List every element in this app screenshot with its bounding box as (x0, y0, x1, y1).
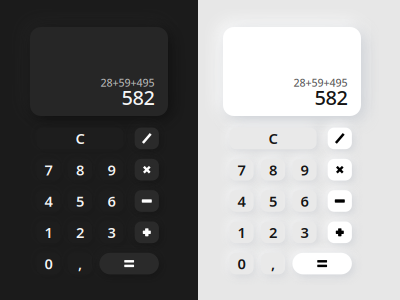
staticText: 9 (107, 160, 115, 179)
button[interactable]: , (261, 253, 285, 274)
staticText: 6 (300, 191, 308, 211)
button[interactable]: 3 (292, 221, 317, 243)
button[interactable]: Multiply (328, 159, 352, 180)
staticText: 28+59+495 (293, 75, 347, 90)
button[interactable]: 6 (292, 190, 317, 212)
button[interactable]: 7 (229, 159, 254, 180)
button[interactable]: 0 (36, 253, 61, 274)
button[interactable]: 2 (68, 221, 92, 243)
button[interactable]: 4 (36, 190, 61, 212)
button[interactable]: Add (328, 221, 352, 243)
staticText: 7 (44, 160, 52, 179)
button[interactable]: Equals (99, 253, 159, 274)
button[interactable]: Multiply (135, 159, 159, 180)
staticText: 2 (269, 223, 277, 242)
staticText: 6 (107, 191, 115, 211)
staticText: 8 (76, 160, 84, 179)
staticText: 3 (300, 223, 308, 242)
button[interactable]: 1 (36, 221, 61, 243)
staticText: 2 (76, 223, 84, 242)
staticText: C (75, 129, 84, 148)
staticText: 582 (314, 84, 347, 111)
staticText: 9 (300, 160, 308, 179)
staticText: , (78, 254, 82, 273)
staticText: 1 (237, 223, 245, 242)
button[interactable]: 2 (261, 221, 285, 243)
button[interactable]: C (36, 128, 124, 149)
staticText: 5 (76, 191, 84, 211)
button[interactable]: 6 (99, 190, 124, 212)
button[interactable]: C (229, 128, 317, 149)
staticText: , (271, 254, 275, 273)
staticText: 0 (44, 254, 52, 273)
button[interactable]: 0 (229, 253, 254, 274)
button[interactable]: Divide (135, 128, 159, 149)
button[interactable]: 8 (68, 159, 92, 180)
staticText: 1 (44, 223, 52, 242)
staticText: C (268, 129, 277, 148)
button[interactable]: , (68, 253, 92, 274)
button[interactable]: 3 (99, 221, 124, 243)
button[interactable]: Subtract (328, 190, 352, 212)
staticText: 8 (269, 160, 277, 179)
staticText: 7 (237, 160, 245, 179)
button[interactable]: 7 (36, 159, 61, 180)
staticText: 582 (121, 84, 154, 111)
button[interactable]: 9 (99, 159, 124, 180)
staticText: 5 (269, 191, 277, 211)
button[interactable]: 9 (292, 159, 317, 180)
button[interactable]: 4 (229, 190, 254, 212)
button[interactable]: Divide (328, 128, 352, 149)
button[interactable]: Subtract (135, 190, 159, 212)
staticText: 28+59+495 (100, 75, 154, 90)
staticText: 4 (237, 191, 245, 211)
button[interactable]: Equals (292, 253, 352, 274)
button[interactable]: 5 (261, 190, 285, 212)
staticText: 3 (107, 223, 115, 242)
button[interactable]: Add (135, 221, 159, 243)
button[interactable]: 8 (261, 159, 285, 180)
button[interactable]: 5 (68, 190, 92, 212)
staticText: 4 (44, 191, 52, 211)
staticText: 0 (237, 254, 245, 273)
button[interactable]: 1 (229, 221, 254, 243)
